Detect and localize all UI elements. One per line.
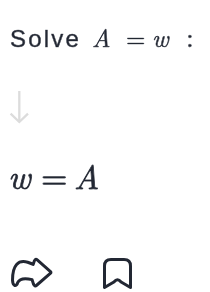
- staticText: w: [152, 19, 169, 54]
- staticText: =: [126, 19, 146, 54]
- staticText: =: [41, 151, 68, 199]
- staticText: A: [74, 151, 100, 199]
- staticText: A: [92, 19, 111, 54]
- staticText: w: [8, 151, 31, 199]
- button[interactable]: Bookmark: [93, 252, 141, 292]
- staticText: A: [92, 19, 111, 54]
- staticText: w: [8, 151, 31, 199]
- staticText: =: [41, 151, 68, 199]
- staticText: A: [74, 151, 100, 199]
- staticText: :: [186, 15, 194, 55]
- staticText: Solve: [10, 25, 82, 52]
- staticText: Solve: [10, 25, 82, 52]
- staticText: w: [152, 19, 169, 54]
- staticText: =: [126, 19, 146, 54]
- button[interactable]: Share: [0, 250, 62, 292]
- staticText: :: [186, 15, 194, 55]
